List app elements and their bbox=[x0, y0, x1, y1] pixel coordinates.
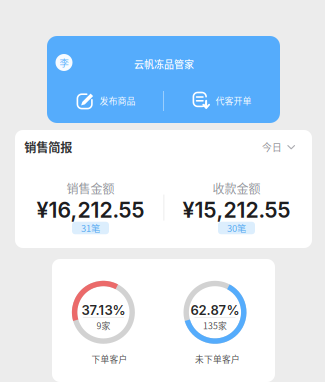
staticText: 代客开单 bbox=[215, 94, 251, 107]
button[interactable]: 代客开单 bbox=[187, 87, 256, 113]
staticText: ¥15,212.55 bbox=[182, 197, 290, 223]
staticText: 今日 bbox=[262, 140, 282, 154]
staticText: 30笔 bbox=[227, 221, 246, 235]
staticText: 37.13% bbox=[81, 302, 125, 318]
staticText: 未下单客户 bbox=[195, 353, 240, 365]
staticText: 李 bbox=[59, 56, 68, 69]
staticText: 9家 bbox=[96, 319, 110, 332]
staticText: 135家 bbox=[203, 319, 227, 332]
staticText: 云帆冻品管家 bbox=[134, 57, 194, 71]
staticText: 发布商品 bbox=[99, 94, 135, 107]
staticText: 销售金额 bbox=[66, 179, 114, 197]
button[interactable]: 发布商品 bbox=[71, 87, 140, 113]
staticText: ¥16,212.55 bbox=[36, 197, 144, 223]
staticText: 收款金额 bbox=[212, 179, 260, 197]
staticText: 31笔 bbox=[81, 221, 100, 235]
staticText: 下单客户 bbox=[91, 353, 127, 365]
staticText: 销售简报 bbox=[24, 138, 72, 156]
button[interactable]: 今日 bbox=[258, 136, 300, 158]
staticText: 62.87% bbox=[190, 302, 239, 318]
